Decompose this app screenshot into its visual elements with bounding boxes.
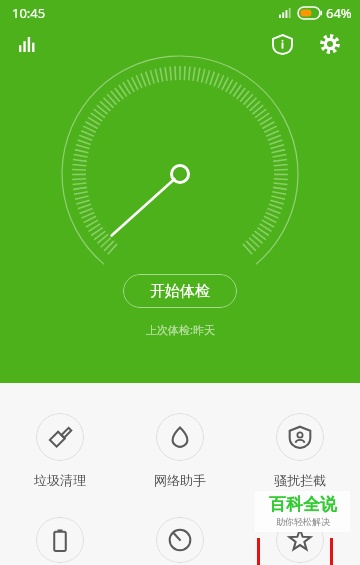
button[interactable] [0, 515, 120, 565]
staticText: 骚扰拦截 [274, 472, 326, 488]
button[interactable]: Settings [310, 26, 350, 62]
button[interactable]: Statistics [10, 27, 44, 61]
button[interactable] [240, 515, 360, 565]
staticText: 助你轻松解决 [276, 516, 330, 527]
button[interactable]: 网络助手 [120, 411, 240, 490]
staticText: 网络助手 [154, 472, 206, 488]
staticText: 百科全说 [269, 494, 337, 515]
staticText: 垃圾清理 [34, 472, 86, 488]
button[interactable]: 垃圾清理 [0, 411, 120, 490]
button[interactable]: 开始体检 [123, 274, 237, 308]
button[interactable]: Security [262, 26, 302, 62]
staticText: 上次体检:昨天 [146, 322, 215, 337]
staticText: 10:45 [12, 4, 46, 22]
button[interactable] [120, 515, 240, 565]
staticText: 开始体检 [150, 282, 210, 301]
staticText: 64% [326, 4, 352, 22]
button[interactable]: 骚扰拦截 [240, 411, 360, 490]
